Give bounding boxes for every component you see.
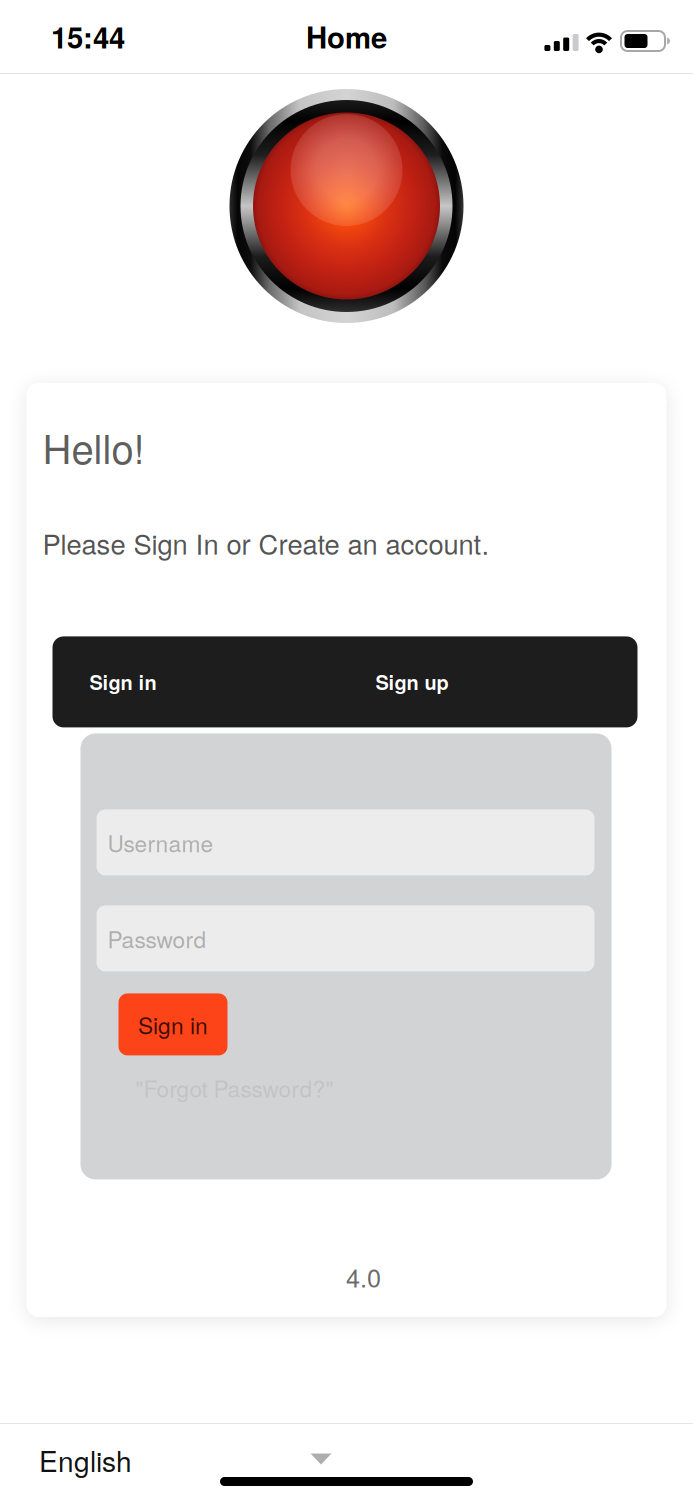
button[interactable]: Sign up — [193, 636, 630, 727]
staticText: Sign in — [138, 1008, 208, 1041]
button[interactable]: "Forgot Password?" — [96, 1071, 333, 1104]
staticText: Hello! — [42, 418, 144, 475]
staticText: English — [39, 1440, 132, 1480]
staticText: 15:44 — [51, 15, 125, 57]
button[interactable]: English — [0, 1422, 171, 1498]
button[interactable]: Select language — [291, 1429, 351, 1489]
staticText: Username — [107, 826, 213, 859]
staticText: Sign up — [375, 668, 448, 696]
button[interactable]: Sign in — [118, 993, 227, 1055]
staticText: Please Sign In or Create an account. — [42, 523, 489, 562]
button[interactable]: Username — [96, 809, 594, 875]
staticText: Password — [107, 922, 206, 955]
button[interactable]: Password — [96, 905, 594, 971]
staticText: 4.0 — [346, 1258, 381, 1295]
staticText: "Forgot Password?" — [135, 1071, 333, 1104]
staticText: Sign in — [89, 668, 156, 696]
staticText: Home — [306, 15, 387, 57]
button[interactable]: Power — [226, 86, 466, 326]
button[interactable]: Sign in — [52, 636, 193, 727]
